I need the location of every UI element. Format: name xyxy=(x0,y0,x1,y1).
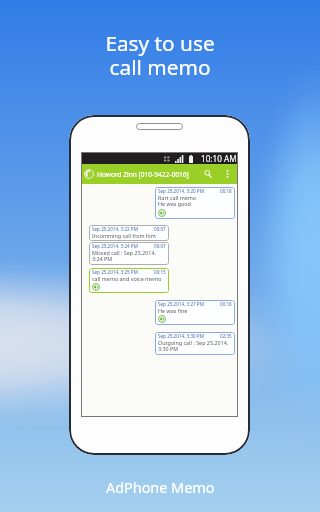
other: Contact xyxy=(84,169,94,179)
button[interactable]: Sep 25,2014, 3:24 PM xyxy=(89,242,169,265)
staticText: Howord Zinn [010-9422-0016] xyxy=(97,170,189,179)
staticText: Incomming call from him xyxy=(92,232,156,239)
staticText: Sep 25,2014, 3:20 PM xyxy=(158,188,204,194)
staticText: 00:15 xyxy=(154,269,166,275)
button[interactable]: Sep 25,2014, 3:22 PM xyxy=(89,225,169,241)
staticText: Sep 25,2014, 3:27 PM xyxy=(158,301,204,307)
button[interactable]: More options xyxy=(224,166,231,182)
staticText: Sep 25,2014, 3:24 PM xyxy=(92,243,138,249)
button[interactable]: Sep 25,2014, 3:25 PM xyxy=(89,268,169,293)
button[interactable]: Play xyxy=(92,283,100,291)
button[interactable]: Play xyxy=(158,209,166,217)
staticText: 02:35 xyxy=(220,333,232,339)
button[interactable]: Sep 25,2014, 3:30 PM xyxy=(155,332,235,355)
button[interactable]: Search xyxy=(201,166,214,182)
button[interactable]: Sep 25,2014, 3:27 PM xyxy=(155,300,235,325)
staticText: Sep 25,2014, 3:30 PM xyxy=(158,333,204,339)
staticText: Rart call memo He was good xyxy=(158,194,197,208)
staticText: 10:10 AM xyxy=(201,153,237,164)
staticText: Missed call : Sep 25,2014, 3:24 PM xyxy=(92,249,166,263)
staticText: Sep 25,2014, 3:25 PM xyxy=(92,269,138,275)
staticText: He was fine xyxy=(158,307,188,314)
staticText: 00:07 xyxy=(154,226,166,232)
staticText: AdPhone Memo xyxy=(106,478,215,498)
staticText: call memo and voice memo xyxy=(92,275,162,282)
staticText: Outgoing call : Sep 25,2014, 3:30 PM xyxy=(158,339,232,353)
staticText: 00:18 xyxy=(220,301,232,307)
staticText: 00:18 xyxy=(220,188,232,194)
button[interactable]: Sep 25,2014, 3:20 PM xyxy=(155,187,235,219)
staticText: Easy to use call memo xyxy=(105,29,215,81)
staticText: 00:07 xyxy=(154,243,166,249)
staticText: Sep 25,2014, 3:22 PM xyxy=(92,226,138,232)
button[interactable]: Play xyxy=(158,315,166,323)
